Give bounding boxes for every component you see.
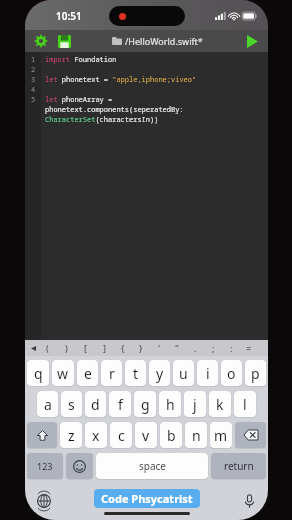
staticText: s xyxy=(68,395,75,414)
button[interactable]: Backspace xyxy=(235,422,266,448)
button[interactable]: b xyxy=(160,422,182,448)
staticText: return xyxy=(224,459,254,473)
staticText: x xyxy=(92,426,100,445)
button[interactable]: Settings xyxy=(31,31,51,51)
button[interactable]: ( xyxy=(38,340,57,356)
staticText: " xyxy=(175,342,179,354)
button[interactable]: c xyxy=(110,422,132,448)
button[interactable]: ) xyxy=(57,340,76,356)
button[interactable]: g xyxy=(134,391,156,417)
button[interactable]: m xyxy=(210,422,232,448)
staticText: : xyxy=(230,342,233,354)
staticText: Code Phsycatrist xyxy=(101,491,193,506)
staticText: q xyxy=(34,364,43,383)
staticText: v xyxy=(142,426,150,445)
button[interactable]: o xyxy=(221,360,242,386)
staticText: t xyxy=(133,364,139,383)
button[interactable]: h xyxy=(159,391,181,417)
staticText: phonetext.components(seperatedBy: xyxy=(45,105,184,115)
button[interactable]: Emoji xyxy=(66,453,93,479)
staticText: f xyxy=(118,395,123,414)
button[interactable]: w xyxy=(52,360,74,386)
button[interactable]: ; xyxy=(204,340,222,356)
button[interactable]: e xyxy=(77,360,98,386)
button[interactable]: j xyxy=(184,391,206,417)
button[interactable]: a xyxy=(37,391,58,417)
button[interactable]: return xyxy=(211,453,266,479)
staticText: l xyxy=(243,395,247,414)
button[interactable]: f xyxy=(109,391,131,417)
button[interactable]: Save xyxy=(54,31,74,51)
button[interactable]: } xyxy=(132,340,150,356)
button[interactable]: z xyxy=(60,422,82,448)
staticText: y xyxy=(156,364,164,383)
button[interactable]: s xyxy=(61,391,82,417)
button[interactable]: t xyxy=(125,360,146,386)
staticText: let phoneArray = xyxy=(45,95,113,105)
button[interactable]: [ xyxy=(76,340,95,356)
button[interactable]: Change keyboard xyxy=(33,490,55,512)
staticText: g xyxy=(141,395,150,414)
button[interactable]: y xyxy=(149,360,170,386)
staticText: o xyxy=(227,364,236,383)
staticText: import Foundation xyxy=(45,55,117,65)
button[interactable]: d xyxy=(85,391,106,417)
staticText: CharacterSet(charactersIn)) xyxy=(45,115,159,125)
button[interactable]: q xyxy=(27,360,49,386)
staticText: 2 xyxy=(31,65,36,75)
staticText: k xyxy=(216,395,224,414)
button[interactable]: r xyxy=(101,360,122,386)
staticText: ' xyxy=(158,342,161,354)
staticText: = xyxy=(246,342,252,354)
staticText: ; xyxy=(212,342,215,354)
staticText: space xyxy=(139,459,166,473)
staticText: 3 xyxy=(31,75,36,85)
staticText: 123 xyxy=(37,460,53,472)
button[interactable]: l xyxy=(234,391,256,417)
staticText: m xyxy=(214,426,228,445)
button[interactable]: Run xyxy=(242,31,262,51)
button[interactable]: space xyxy=(96,453,208,479)
staticText: 1 xyxy=(31,55,36,65)
staticText: } xyxy=(139,342,143,354)
staticText: u xyxy=(179,364,188,383)
staticText: n xyxy=(192,426,201,445)
staticText: a xyxy=(44,395,52,414)
staticText: 5 xyxy=(31,95,36,105)
button[interactable]: Previous xyxy=(28,340,38,356)
staticText: [ xyxy=(84,342,87,354)
button[interactable]: ] xyxy=(95,340,114,356)
staticText: 4 xyxy=(31,85,36,95)
button[interactable]: i xyxy=(197,360,218,386)
staticText: r xyxy=(109,364,115,383)
button[interactable]: n xyxy=(185,422,207,448)
button[interactable]: ' xyxy=(150,340,168,356)
button[interactable]: k xyxy=(209,391,231,417)
button[interactable]: v xyxy=(135,422,157,448)
staticText: h xyxy=(166,395,175,414)
button[interactable]: p xyxy=(245,360,266,386)
staticText: j xyxy=(193,395,197,414)
staticText: p xyxy=(251,364,260,383)
staticText: 10:51 xyxy=(56,9,82,23)
staticText: /HelloWorld.swift* xyxy=(125,35,203,47)
staticText: d xyxy=(91,395,100,414)
staticText: ] xyxy=(103,342,106,354)
staticText: { xyxy=(121,342,125,354)
button[interactable]: 123 xyxy=(27,453,63,479)
button[interactable]: Code Phsycatrist xyxy=(101,491,193,506)
staticText: e xyxy=(84,364,92,383)
button[interactable]: u xyxy=(173,360,194,386)
staticText: . xyxy=(194,342,197,354)
staticText: ) xyxy=(65,342,68,354)
button[interactable]: " xyxy=(168,340,186,356)
button[interactable]: = xyxy=(240,340,258,356)
button[interactable]: Shift xyxy=(27,422,57,448)
staticText: ( xyxy=(46,342,49,354)
button[interactable]: : xyxy=(222,340,240,356)
button[interactable]: Dictate xyxy=(238,490,260,512)
button[interactable]: x xyxy=(85,422,107,448)
button[interactable]: . xyxy=(186,340,204,356)
button[interactable]: { xyxy=(114,340,132,356)
staticText: w xyxy=(57,364,69,383)
